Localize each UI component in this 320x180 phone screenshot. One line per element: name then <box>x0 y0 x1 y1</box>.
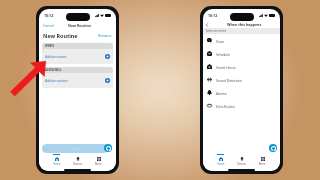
staticText: Devices <box>73 162 83 166</box>
button[interactable]: Alarms <box>203 86 280 99</box>
button[interactable]: Echo Button <box>203 99 280 112</box>
staticText: New Routine <box>43 32 78 39</box>
button[interactable]: Devices <box>67 154 88 166</box>
button[interactable]: Rename <box>98 33 112 38</box>
staticText: Devices <box>237 162 247 166</box>
button[interactable]: More <box>88 154 109 166</box>
staticText: 10:12 <box>208 13 218 18</box>
staticText: Add an event <box>45 54 67 59</box>
staticText: Search <box>70 147 81 151</box>
staticText: Add an action <box>45 78 68 83</box>
staticText: Echo Button <box>216 104 235 108</box>
staticText: More <box>259 162 266 166</box>
staticText: Sound Detection <box>216 78 242 82</box>
staticText: 10:12 <box>44 13 54 18</box>
button[interactable]: Voice <box>203 34 280 47</box>
staticText: ALEXA WILL <box>45 68 62 72</box>
button[interactable]: Alexa <box>104 144 112 152</box>
button[interactable]: Alexa <box>269 144 277 152</box>
staticText: New Routine <box>68 23 92 28</box>
staticText: Home <box>53 162 61 166</box>
button[interactable]: Add an event <box>42 49 113 64</box>
button[interactable]: Home <box>210 154 231 166</box>
staticText: Schedule <box>216 52 231 56</box>
staticText: Select an event <box>206 29 226 33</box>
staticText: Voice <box>216 39 225 43</box>
button[interactable]: Add an action <box>42 73 113 88</box>
button[interactable]: More <box>252 154 273 166</box>
button[interactable]: Sound Detection <box>203 73 280 86</box>
button[interactable]: Schedule <box>203 47 280 60</box>
staticText: WHEN <box>45 44 54 48</box>
button[interactable]: Devices <box>231 154 252 166</box>
staticText: More <box>95 162 102 166</box>
button[interactable]: Back <box>203 21 210 28</box>
staticText: Smart Home <box>216 65 236 69</box>
button[interactable]: Home <box>46 154 67 166</box>
staticText: When this happens <box>227 22 262 27</box>
button[interactable]: Search <box>42 144 108 153</box>
staticText: Alarms <box>216 91 227 95</box>
staticText: Home <box>217 162 225 166</box>
button[interactable]: Cancel <box>43 23 55 28</box>
button[interactable]: Smart Home <box>203 60 280 73</box>
